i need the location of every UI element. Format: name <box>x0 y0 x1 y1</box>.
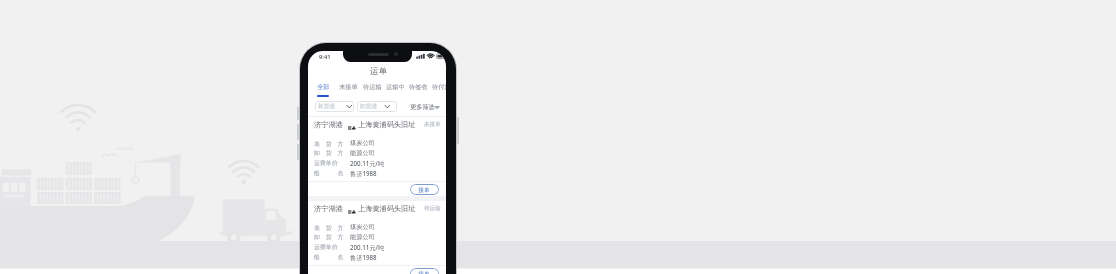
button[interactable]: 济宁湖港 <box>308 118 446 197</box>
staticText: 装 货 方 <box>314 224 344 232</box>
staticText: 来接单 <box>424 121 441 128</box>
staticText: 卸货港 <box>360 103 378 110</box>
staticText: 运费单价 <box>314 243 338 250</box>
staticText: 200.11元/吨 <box>350 243 385 251</box>
staticText: 卸 货 方 <box>314 149 344 157</box>
staticText: 200.11元/吨 <box>350 159 385 167</box>
staticText: 接单 <box>418 186 431 194</box>
button[interactable]: 运输中 <box>386 83 405 91</box>
staticText: 能源公司 <box>350 149 375 157</box>
button[interactable]: 全部 <box>317 83 330 91</box>
staticText: 装 货 方 <box>314 140 344 148</box>
staticText: 卸 货 方 <box>314 233 344 241</box>
staticText: 能源公司 <box>350 233 375 241</box>
staticText: 上海黄浦码头旧址 <box>358 120 416 129</box>
button[interactable]: 接单 <box>410 184 439 195</box>
staticText: 煤炭公司 <box>350 223 375 231</box>
staticText: 装货港 <box>318 103 336 110</box>
staticText: 鲁济1988 <box>350 253 377 261</box>
button[interactable]: 更多筛选 <box>407 101 442 112</box>
staticText: 待运输 <box>424 205 441 212</box>
staticText: 济宁湖港 <box>314 204 343 213</box>
staticText: 鲁济1988 <box>350 169 377 177</box>
staticText: 来接单 <box>339 83 358 91</box>
staticText: 上海黄浦码头旧址 <box>358 204 416 213</box>
button[interactable]: 来接单 <box>339 83 358 91</box>
button[interactable]: 待运输 <box>363 83 382 91</box>
staticText: 煤炭公司 <box>350 139 375 147</box>
staticText: 待付款 <box>432 83 446 91</box>
staticText: 济宁湖港 <box>314 120 343 129</box>
staticText: 待签收 <box>409 83 428 91</box>
staticText: 待运输 <box>363 83 382 91</box>
staticText: 全部 <box>317 83 330 91</box>
staticText: 接单 <box>418 270 431 274</box>
staticText: 运费单价 <box>314 159 338 166</box>
staticText: 9:41 <box>319 53 331 61</box>
button[interactable]: 装货港 <box>315 101 354 112</box>
button[interactable]: 济宁湖港 <box>308 202 446 274</box>
staticText: 船 名 <box>314 253 344 261</box>
staticText: 船 名 <box>314 169 344 177</box>
button[interactable]: 卸货港 <box>357 101 397 112</box>
button[interactable]: 接单 <box>410 268 439 274</box>
staticText: 更多筛选 <box>410 103 435 111</box>
button[interactable]: 待签收 <box>409 83 428 91</box>
staticText: 运单 <box>370 66 388 76</box>
staticText: 运输中 <box>386 83 405 91</box>
button[interactable]: 待付款 <box>432 83 446 91</box>
